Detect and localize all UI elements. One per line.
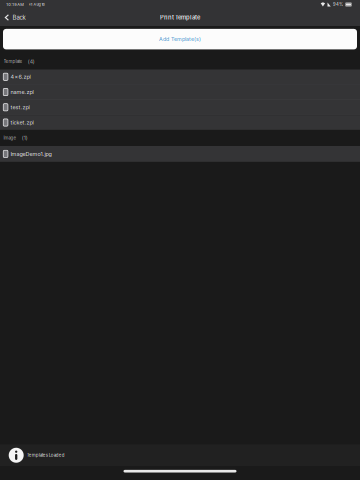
staticText: ImageDemo1.jpg [10, 151, 51, 157]
staticText: (4) [28, 58, 35, 65]
staticText: 4x6.zpl [10, 73, 30, 80]
staticText: 10:19 AM [6, 2, 24, 7]
staticText: Add Template(s) [159, 36, 201, 42]
staticText: 94% [333, 2, 343, 7]
button[interactable]: Back [0, 9, 29, 26]
button[interactable]: ticket.zpl [0, 115, 360, 130]
staticText: (1) [22, 135, 28, 141]
staticText: Image [4, 135, 17, 140]
button[interactable]: Add Template(s) [3, 29, 357, 49]
staticText: Fri Aug 18 [29, 2, 45, 7]
button[interactable]: ImageDemo1.jpg [0, 146, 360, 162]
button[interactable]: 4x6.zpl [0, 69, 360, 84]
staticText: ticket.zpl [10, 119, 33, 126]
staticText: test.zpl [10, 104, 29, 111]
button[interactable]: test.zpl [0, 100, 360, 115]
staticText: Back [12, 14, 25, 21]
staticText: name.zpl [10, 89, 33, 95]
staticText: Templates Loaded [27, 453, 65, 458]
button[interactable]: name.zpl [0, 85, 360, 99]
staticText: Template [4, 59, 23, 64]
staticText: Print Template [160, 14, 200, 21]
